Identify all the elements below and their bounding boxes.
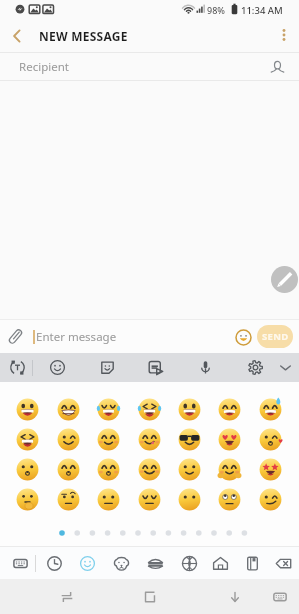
button[interactable]: Activities <box>174 547 204 579</box>
button[interactable]: Emoji 17 <box>93 454 123 484</box>
button[interactable]: Emoji 5 <box>174 394 204 424</box>
button[interactable]: Objects <box>237 547 267 579</box>
staticText: Enter message <box>36 329 117 345</box>
button[interactable]: Emoji 26 <box>174 484 204 514</box>
staticText: 98% <box>207 4 225 16</box>
button[interactable]: Emoji 3 <box>93 394 123 424</box>
button[interactable]: Emoji 22 <box>12 484 42 514</box>
button[interactable]: More options <box>269 20 299 52</box>
button[interactable]: Emoji 13 <box>214 424 244 454</box>
button[interactable]: Voice input <box>191 353 220 382</box>
button[interactable]: Emoji 23 <box>53 484 83 514</box>
button[interactable]: Food and drink <box>140 547 170 579</box>
button[interactable]: Travel and places <box>205 547 235 579</box>
button[interactable]: Emoji 19 <box>174 454 204 484</box>
button[interactable]: Switch keyboard <box>263 579 297 614</box>
button[interactable]: Emoji 25 <box>134 484 164 514</box>
button[interactable]: Emoji 8 <box>12 424 42 454</box>
button[interactable]: Recently used <box>39 547 69 579</box>
button[interactable]: Text conversion <box>3 353 32 382</box>
button[interactable]: Attach file <box>0 320 31 353</box>
button[interactable]: Stickers <box>93 353 122 382</box>
button[interactable]: Emoji 21 <box>255 454 285 484</box>
button[interactable]: Keyboard settings <box>241 353 270 382</box>
button[interactable]: Emoji 10 <box>93 424 123 454</box>
staticText: Recipient <box>19 59 69 75</box>
button[interactable]: Hide keyboard <box>218 579 252 614</box>
button[interactable]: Emoji 9 <box>53 424 83 454</box>
button[interactable]: Emoji 6 <box>214 394 244 424</box>
button[interactable]: Emoji 1 <box>12 394 42 424</box>
button[interactable]: Emoji 14 <box>255 424 285 454</box>
button[interactable]: Backspace <box>268 547 298 579</box>
button[interactable]: Recent apps <box>50 579 84 614</box>
button[interactable]: Home <box>133 579 167 614</box>
button[interactable]: Emoji 11 <box>134 424 164 454</box>
button[interactable]: Emoji 20 <box>214 454 244 484</box>
button[interactable]: Collapse toolbar <box>271 353 299 382</box>
button[interactable]: Emoji 28 <box>255 484 285 514</box>
button[interactable]: Emoji <box>43 353 72 382</box>
button[interactable]: SEND <box>257 325 293 348</box>
button[interactable]: Smileys and people <box>72 547 102 579</box>
button[interactable]: Compose message <box>271 266 298 293</box>
button[interactable]: Emoji 27 <box>214 484 244 514</box>
button[interactable]: Keyboard <box>5 547 35 579</box>
button[interactable]: Emoji 15 <box>12 454 42 484</box>
button[interactable]: Animals and nature <box>106 547 136 579</box>
button[interactable]: Add recipient from contacts <box>262 53 292 80</box>
button[interactable]: Emoji 16 <box>53 454 83 484</box>
button[interactable]: Emoji 4 <box>134 394 164 424</box>
button[interactable]: Emoji 24 <box>93 484 123 514</box>
button[interactable]: Emoji 7 <box>255 394 285 424</box>
staticText: SEND <box>262 330 289 343</box>
staticText: 11:34 AM <box>241 4 283 17</box>
button[interactable]: Emoji 18 <box>134 454 164 484</box>
button[interactable]: GIF <box>141 353 170 382</box>
button[interactable]: Back <box>0 20 34 52</box>
button[interactable]: Insert emoji <box>229 323 257 351</box>
button[interactable]: Emoji 2 <box>53 394 83 424</box>
staticText: NEW MESSAGE <box>39 28 128 44</box>
button[interactable]: Emoji 12 <box>174 424 204 454</box>
